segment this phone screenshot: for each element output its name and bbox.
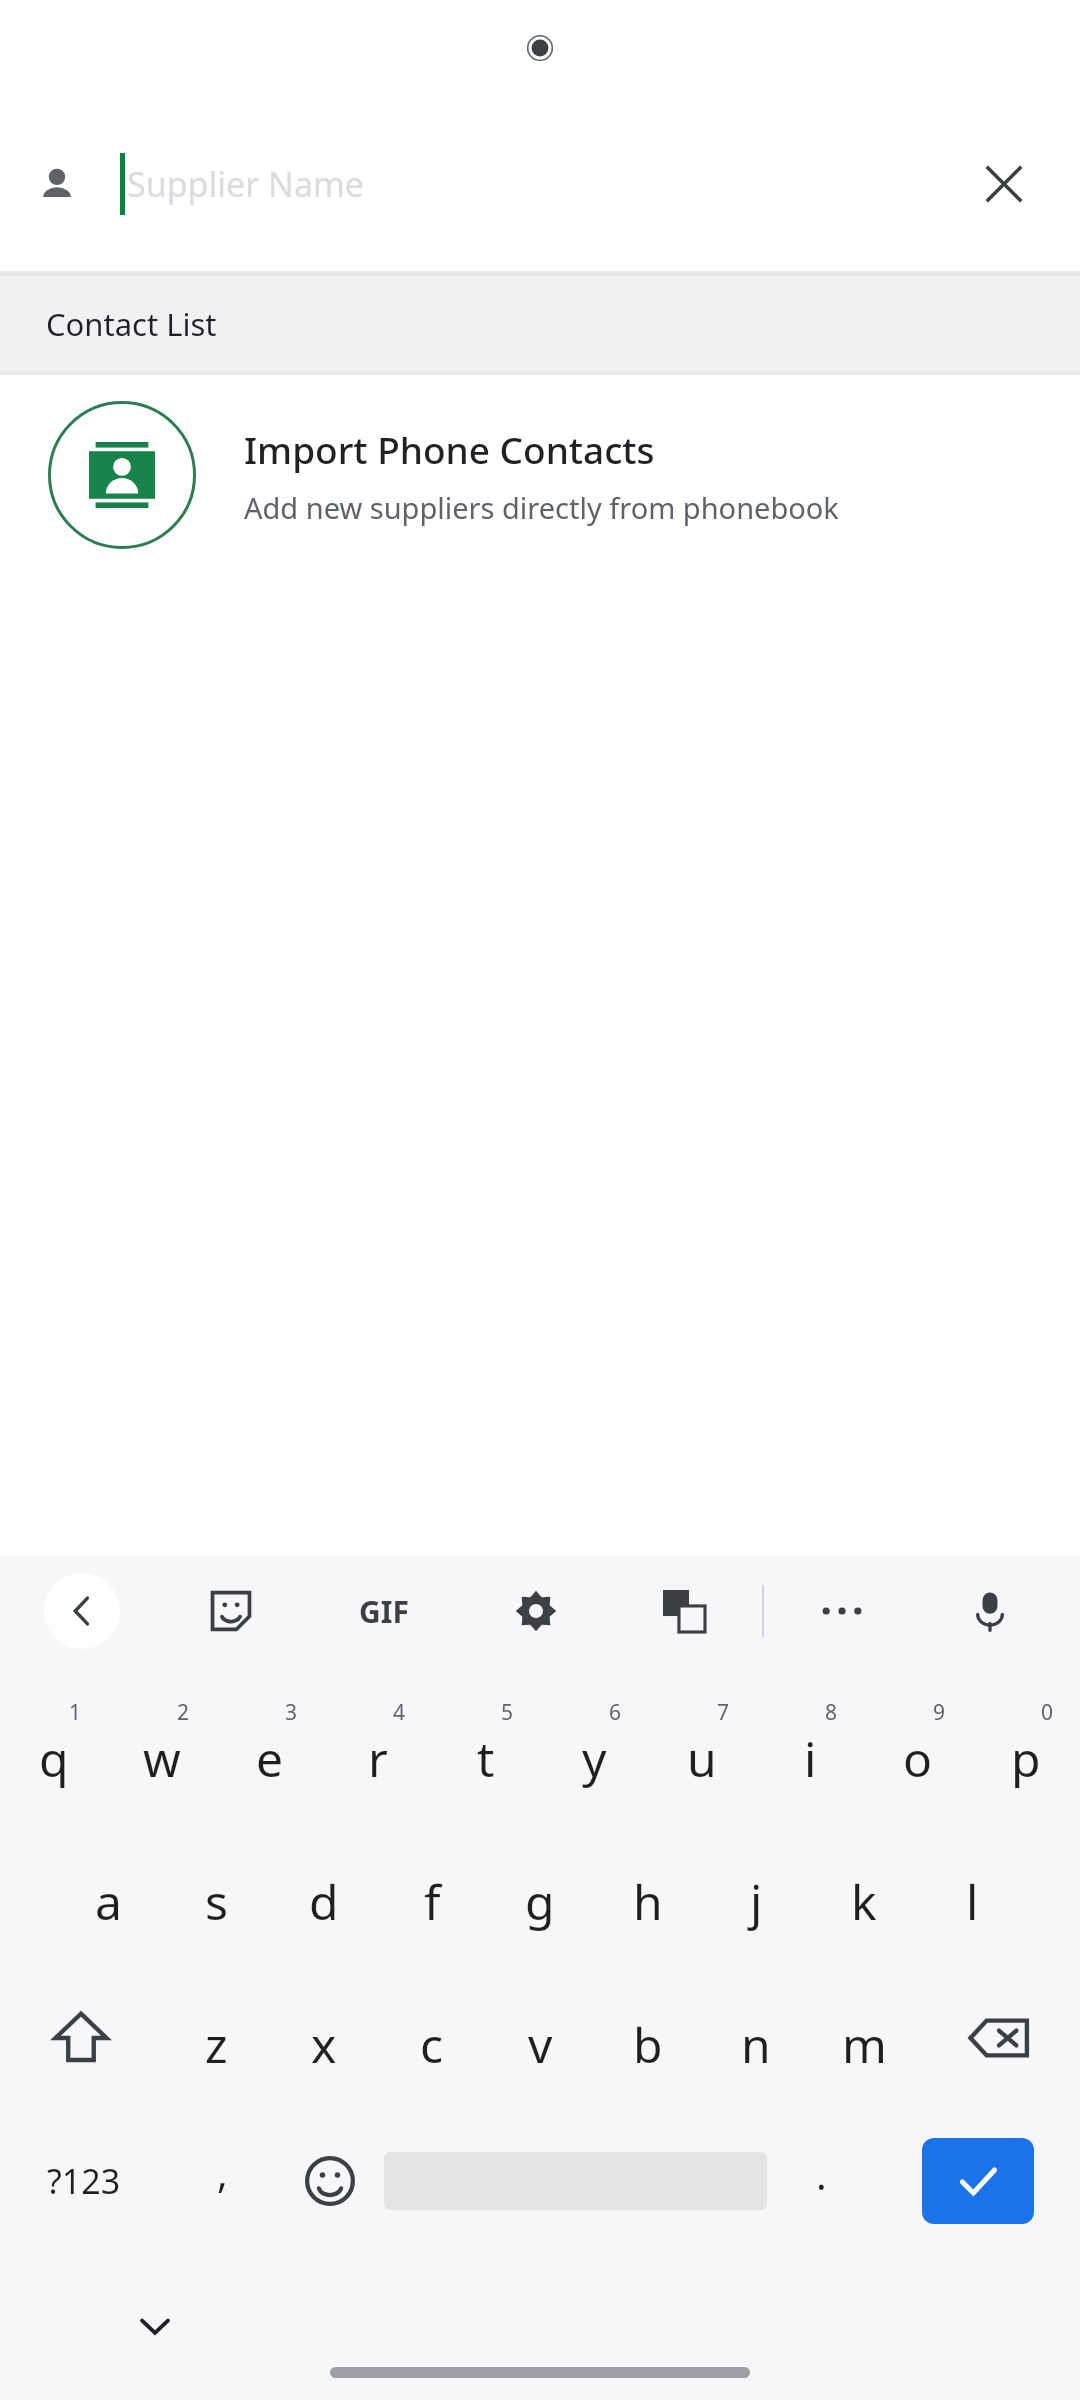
button[interactable]: 1 (0, 1680, 108, 1823)
staticText: w (143, 1726, 181, 1791)
staticText: 4 (393, 1698, 406, 1727)
staticText: 5 (501, 1698, 514, 1727)
staticText: z (205, 2012, 228, 2077)
button[interactable]: v (486, 1966, 594, 2109)
button[interactable]: k (810, 1823, 918, 1966)
staticText: Supplier Name (127, 161, 364, 207)
staticText: i (804, 1726, 817, 1791)
staticText: k (851, 1869, 877, 1934)
button[interactable]: 7 (648, 1680, 756, 1823)
button[interactable]: 4 (324, 1680, 432, 1823)
button[interactable]: 5 (432, 1680, 540, 1823)
button[interactable]: Stickers (193, 1573, 269, 1649)
staticText: Contact List (46, 303, 217, 345)
button[interactable]: 3 (216, 1680, 324, 1823)
staticText: 2 (177, 1698, 190, 1727)
staticText: d (309, 1869, 339, 1934)
button[interactable]: Translate (646, 1573, 722, 1649)
button[interactable]: . (767, 2109, 875, 2252)
staticText: f (424, 1869, 441, 1934)
staticText: l (966, 1869, 979, 1934)
button[interactable]: 2 (108, 1680, 216, 1823)
button[interactable]: c (378, 1966, 486, 2109)
button[interactable]: n (702, 1966, 810, 2109)
button[interactable]: j (702, 1823, 810, 1966)
button[interactable]: Backspace (918, 1966, 1080, 2109)
button[interactable]: 9 (864, 1680, 972, 1823)
staticText: 3 (285, 1698, 298, 1727)
staticText: 7 (717, 1698, 730, 1727)
staticText: o (903, 1726, 933, 1791)
button[interactable]: h (594, 1823, 702, 1966)
staticText: GIF (359, 1591, 409, 1632)
staticText: Add new suppliers directly from phoneboo… (244, 488, 839, 527)
staticText: a (95, 1869, 122, 1934)
staticText: m (842, 2012, 887, 2077)
staticText: 8 (825, 1698, 838, 1727)
staticText: x (311, 2012, 337, 2077)
staticText: j (750, 1869, 763, 1934)
staticText: t (477, 1726, 495, 1791)
button[interactable]: Back (44, 1573, 120, 1649)
button[interactable]: 8 (756, 1680, 864, 1823)
button[interactable]: Hide keyboard (118, 2289, 192, 2363)
staticText: s (205, 1869, 228, 1934)
button[interactable]: Settings (498, 1573, 574, 1649)
button[interactable]: Clear text (964, 144, 1044, 224)
staticText: n (741, 2012, 771, 2077)
button[interactable]: g (486, 1823, 594, 1966)
button[interactable]: Shift (0, 1966, 162, 2109)
staticText: c (420, 2012, 444, 2077)
button[interactable]: m (810, 1966, 918, 2109)
button[interactable]: a (54, 1823, 162, 1966)
button[interactable]: More options (804, 1573, 880, 1649)
button[interactable]: GIF (342, 1569, 426, 1653)
button[interactable]: Voice input (952, 1573, 1028, 1649)
button[interactable]: Enter (922, 2138, 1034, 2224)
button[interactable]: 6 (540, 1680, 648, 1823)
button[interactable]: ?123 (0, 2109, 168, 2252)
button[interactable]: f (378, 1823, 486, 1966)
button[interactable]: d (270, 1823, 378, 1966)
staticText: 1 (69, 1698, 82, 1727)
button[interactable]: b (594, 1966, 702, 2109)
button[interactable]: Emoji (276, 2109, 384, 2252)
staticText: r (368, 1726, 388, 1791)
staticText: ?123 (47, 2158, 121, 2204)
staticText: , (217, 2145, 228, 2199)
staticText: 0 (1041, 1698, 1054, 1727)
button[interactable]: x (270, 1966, 378, 2109)
button[interactable]: , (168, 2109, 276, 2252)
staticText: v (528, 2012, 553, 2077)
button[interactable]: s (162, 1823, 270, 1966)
staticText: 9 (933, 1698, 946, 1727)
button[interactable]: 0 (972, 1680, 1080, 1823)
staticText: e (256, 1726, 284, 1791)
button[interactable]: Import Phone Contacts (0, 375, 1080, 575)
staticText: . (816, 2147, 827, 2201)
staticText: p (1011, 1726, 1041, 1791)
button[interactable]: l (918, 1823, 1026, 1966)
staticText: u (687, 1726, 717, 1791)
staticText: h (633, 1869, 663, 1934)
staticText: y (582, 1726, 607, 1791)
staticText: g (525, 1869, 555, 1934)
staticText: b (633, 2012, 663, 2077)
staticText: 6 (609, 1698, 622, 1727)
button[interactable]: z (162, 1966, 270, 2109)
staticText: q (39, 1726, 69, 1791)
staticText: Import Phone Contacts (244, 424, 655, 474)
